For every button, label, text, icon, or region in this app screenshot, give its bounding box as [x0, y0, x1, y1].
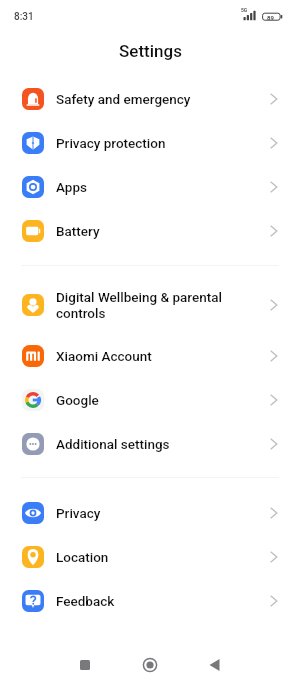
staticText: Digital Wellbeing & parental controls	[56, 289, 222, 321]
staticText: Privacy protection	[56, 135, 166, 151]
button[interactable]: Privacy	[0, 491, 300, 535]
staticText: Xiaomi Account	[56, 348, 152, 364]
button[interactable]: Digital Wellbeing & parental controls	[0, 280, 300, 330]
staticText: 8:31	[14, 11, 34, 23]
staticText: 89	[267, 14, 274, 21]
button[interactable]: Feedback	[0, 579, 300, 623]
button[interactable]: Additional settings	[0, 422, 300, 466]
button[interactable]: Battery	[0, 209, 300, 253]
button[interactable]: Xiaomi Account	[0, 334, 300, 378]
staticText: Settings	[119, 41, 182, 61]
staticText: Battery	[56, 223, 100, 239]
button[interactable]: Recents	[65, 645, 105, 683]
button[interactable]: Safety and emergency	[0, 77, 300, 121]
staticText: Location	[56, 549, 109, 565]
staticText: Google	[56, 392, 99, 408]
button[interactable]: Home	[130, 645, 170, 683]
staticText: Privacy	[56, 505, 101, 521]
button[interactable]: Privacy protection	[0, 121, 300, 165]
button[interactable]: Apps	[0, 165, 300, 209]
staticText: Apps	[56, 179, 87, 195]
button[interactable]: Google	[0, 378, 300, 422]
staticText: Feedback	[56, 593, 115, 609]
button[interactable]: Back	[195, 645, 235, 683]
staticText: 5G	[241, 7, 248, 13]
staticText: Safety and emergency	[56, 91, 191, 107]
staticText: Additional settings	[56, 436, 170, 452]
button[interactable]: Location	[0, 535, 300, 579]
